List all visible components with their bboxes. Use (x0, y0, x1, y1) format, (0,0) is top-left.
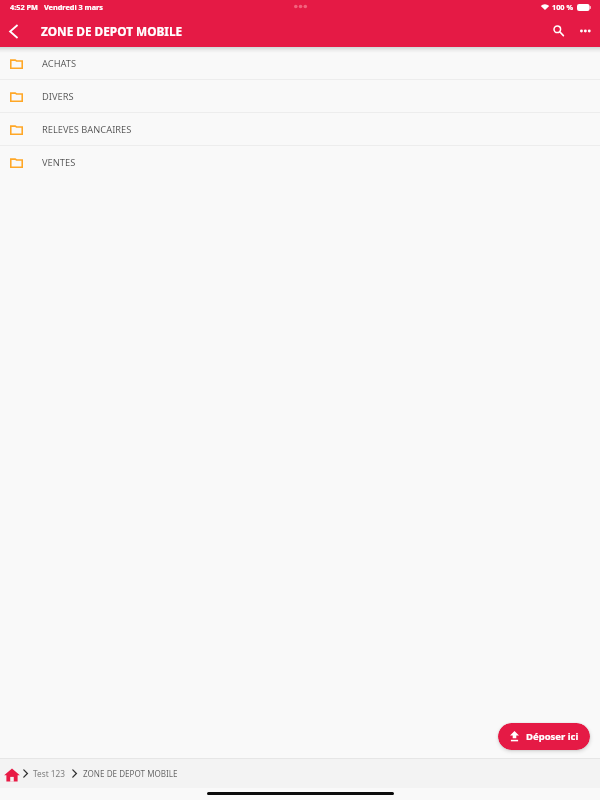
button[interactable]: Search (547, 20, 569, 42)
button[interactable]: More options (574, 20, 596, 42)
staticText: Déposer ici (526, 730, 579, 743)
button[interactable]: DIVERS (0, 80, 600, 112)
staticText: VENTES (42, 156, 76, 169)
button[interactable]: VENTES (0, 146, 600, 178)
staticText: Vendredi 3 mars (44, 2, 103, 12)
staticText: DIVERS (42, 90, 74, 103)
staticText: ZONE DE DEPOT MOBILE (83, 768, 178, 779)
button[interactable]: ACHATS (0, 47, 600, 79)
button[interactable]: Déposer ici (498, 723, 590, 750)
staticText: 4:52 PM (10, 2, 38, 12)
button[interactable]: Back (0, 18, 26, 44)
staticText: Test 123 (33, 768, 66, 779)
staticText: 100 % (552, 2, 574, 12)
staticText: ZONE DE DEPOT MOBILE (41, 23, 183, 39)
button[interactable]: Home (4, 766, 20, 782)
button[interactable]: RELEVES BANCAIRES (0, 113, 600, 145)
staticText: RELEVES BANCAIRES (42, 123, 132, 136)
staticText: ACHATS (42, 57, 77, 70)
